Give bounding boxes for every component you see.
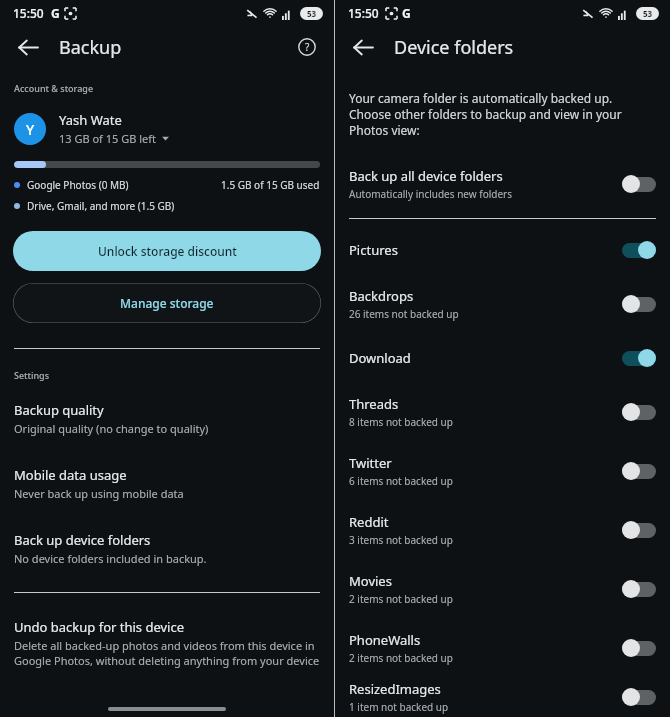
staticText: Download [349, 349, 411, 367]
staticText: Pictures [349, 241, 398, 259]
button[interactable]: Backup quality [0, 401, 334, 440]
staticText: Manage storage [120, 295, 214, 311]
staticText: 6 items not backed up [349, 474, 453, 488]
staticText: No device folders included in backup. [14, 551, 207, 566]
staticText: Unlock storage discount [98, 243, 237, 259]
staticText: 8 items not backed up [349, 415, 453, 429]
staticText: 2 items not backed up [349, 651, 453, 665]
staticText: Backup [59, 35, 122, 60]
staticText: Your camera folder is automatically back… [349, 90, 656, 138]
staticText: G [51, 5, 60, 21]
button[interactable]: Back up device folders [0, 531, 334, 570]
staticText: 13 GB of 15 GB left [59, 131, 157, 146]
button[interactable]: Threads [335, 383, 670, 441]
button[interactable] [622, 403, 656, 421]
staticText: 53 [643, 8, 653, 19]
staticText: 2 items not backed up [349, 592, 453, 606]
staticText: 26 items not backed up [349, 307, 459, 321]
button[interactable] [622, 175, 656, 193]
button[interactable]: Back [348, 32, 378, 62]
staticText: Device folders [394, 35, 514, 60]
button[interactable]: Unlock storage discount [13, 231, 321, 271]
staticText: Threads [349, 395, 399, 413]
button[interactable]: Twitter [335, 441, 670, 500]
button[interactable] [622, 639, 656, 657]
staticText: Automatically includes new folders [349, 187, 513, 201]
staticText: Original quality (no change to quality) [14, 421, 209, 436]
staticText: Account & storage [14, 82, 94, 94]
button[interactable]: Undo backup for this device [0, 618, 334, 668]
staticText: ResizedImages [349, 680, 441, 698]
button[interactable]: Y [0, 111, 334, 146]
button[interactable]: Movies [335, 559, 670, 618]
button[interactable]: Mobile data usage [0, 466, 334, 505]
button[interactable]: Backdrops [335, 275, 670, 333]
staticText: 15:50 [348, 5, 379, 21]
staticText: Backdrops [349, 287, 414, 305]
button[interactable]: Pictures [335, 225, 670, 275]
button[interactable]: Back up all device folders [335, 160, 670, 208]
staticText: ? [305, 40, 310, 54]
staticText: Drive, Gmail, and more (1.5 GB) [27, 199, 175, 213]
button[interactable]: ResizedImages [335, 677, 670, 717]
staticText: Y [26, 120, 35, 139]
button[interactable] [622, 295, 656, 313]
staticText: Never back up using mobile data [14, 486, 184, 501]
button[interactable]: Back [13, 32, 43, 62]
staticText: G [402, 5, 411, 21]
button[interactable] [622, 349, 656, 367]
staticText: Back up device folders [14, 531, 151, 549]
staticText: Settings [14, 369, 50, 381]
staticText: Reddit [349, 513, 389, 531]
button[interactable] [622, 580, 656, 598]
staticText: 15:50 [13, 5, 44, 21]
staticText: 53 [307, 8, 317, 19]
staticText: Delete all backed-up photos and videos f… [14, 638, 320, 668]
staticText: Movies [349, 572, 392, 590]
button[interactable]: Manage storage [13, 283, 321, 323]
staticText: 1 item not backed up [349, 700, 449, 714]
staticText: Back up all device folders [349, 167, 503, 185]
button[interactable]: Download [335, 333, 670, 383]
button[interactable] [622, 521, 656, 539]
staticText: 1.5 GB of 15 GB used [221, 178, 320, 192]
button[interactable]: PhoneWalls [335, 618, 670, 677]
staticText: Twitter [349, 454, 392, 472]
staticText: PhoneWalls [349, 631, 421, 649]
button[interactable]: Help [293, 33, 321, 61]
staticText: Yash Wate [59, 111, 122, 129]
button[interactable]: Reddit [335, 500, 670, 559]
button[interactable] [622, 462, 656, 480]
staticText: Undo backup for this device [14, 618, 185, 636]
staticText: Backup quality [14, 401, 104, 419]
button[interactable] [622, 241, 656, 259]
button[interactable] [622, 688, 656, 706]
staticText: 3 items not backed up [349, 533, 453, 547]
staticText: Mobile data usage [14, 466, 127, 484]
staticText: Google Photos (0 MB) [27, 178, 129, 192]
